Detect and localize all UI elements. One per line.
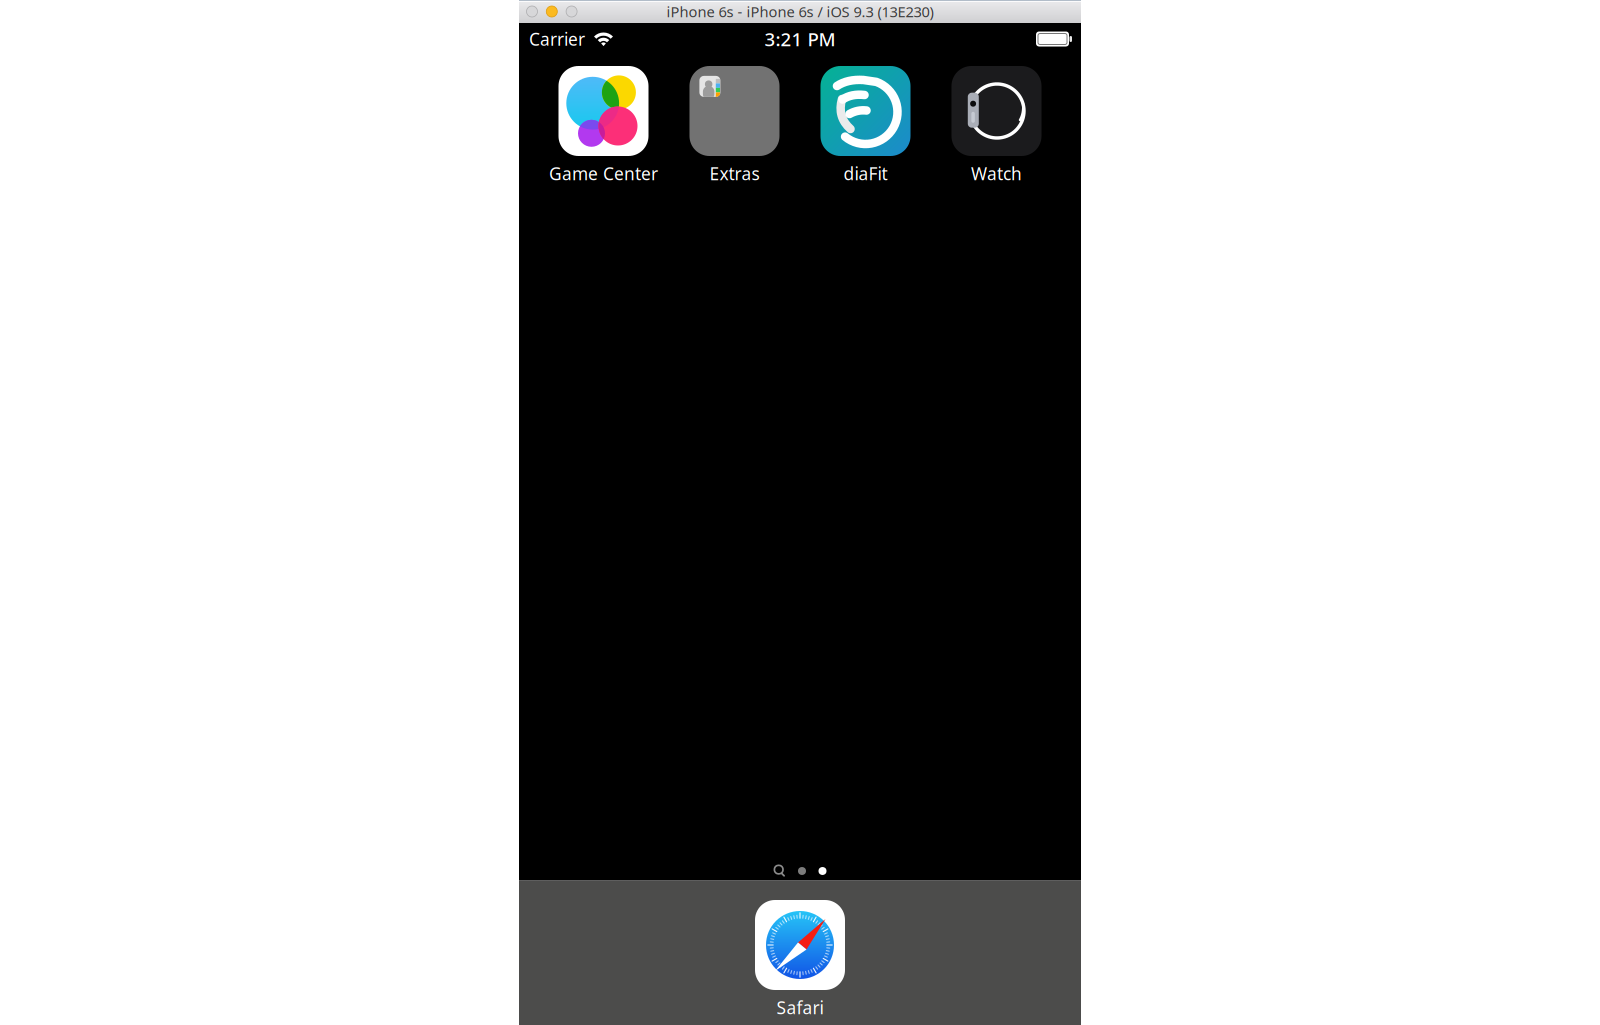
button[interactable]: Watch [931,66,1062,182]
button[interactable]: diaFit [800,66,931,182]
staticText: iPhone 6s - iPhone 6s / iOS 9.3 (13E230) [666,2,933,21]
staticText: diaFit [843,162,887,185]
button[interactable]: Zoom [566,6,577,17]
button[interactable]: Minimize [546,6,557,17]
staticText: Game Center [549,162,658,185]
button[interactable]: Game Center [538,66,669,182]
staticText: Carrier [529,27,585,50]
button[interactable]: Search [773,865,785,877]
button[interactable]: Extras [669,66,800,182]
staticText: Safari [776,996,823,1019]
staticText: 3:21 PM [764,27,835,51]
staticText: Watch [971,162,1022,185]
button[interactable]: Safari [734,900,865,1016]
button[interactable]: Close [526,6,537,17]
staticText: Extras [709,162,759,185]
